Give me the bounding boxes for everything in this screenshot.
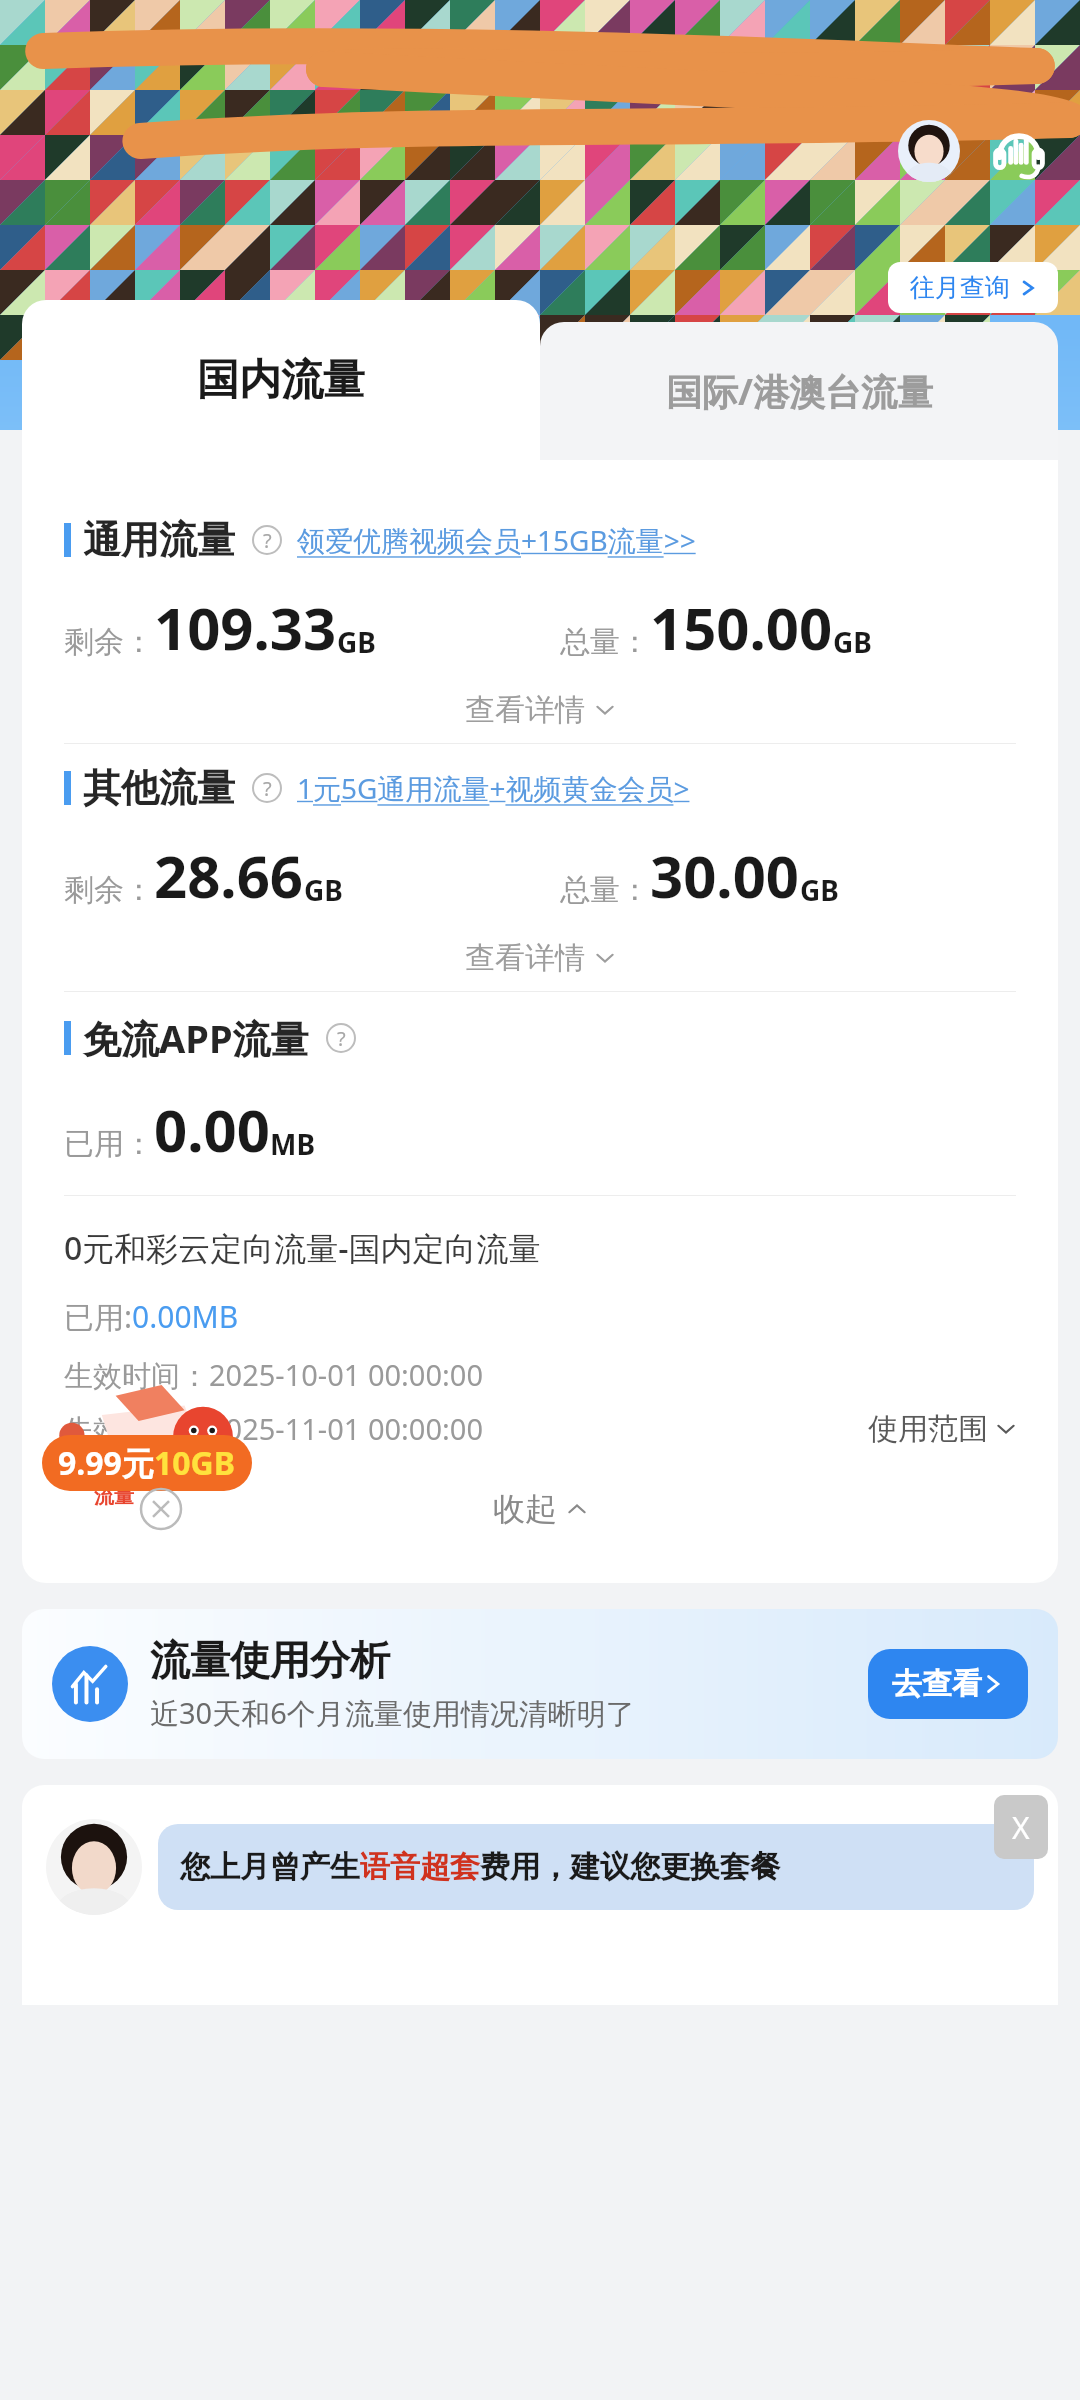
staticText: 10GB [154,1441,236,1485]
button[interactable]: Help [251,772,283,804]
staticText: 失效时间：2025-11-01 00:00:00 [64,1409,483,1449]
staticText: ? [263,527,272,554]
button[interactable]: Customer service [988,120,1050,182]
staticText: 28.66 [154,836,304,915]
staticText: 109.33 [154,588,337,667]
staticText: 副卡查询 [910,347,1010,378]
staticText: X [1012,1807,1030,1848]
staticText: 全球通金卡 [319,360,454,394]
staticText: GB [337,623,376,661]
staticText: 其他流量 [83,764,235,812]
staticText: 去查看 [892,1665,982,1703]
staticText: 剩余： [64,623,154,661]
button[interactable]: 去查看 [868,1649,1028,1719]
button[interactable]: 流量使用分析 [22,1609,1058,1759]
staticText: 查看详情 [465,691,585,729]
staticText: ? [337,1025,346,1052]
staticText: 总量： [560,623,650,661]
staticText: 近30天和6个月流量使用情况清晰明了 [150,1693,635,1733]
staticText: 1元5G通用流量+视频黄金会员> [297,769,690,807]
staticText: MB [270,1125,316,1163]
staticText: 生效时间：2025-10-01 00:00:00 [64,1355,483,1395]
staticText: 免流APP流量 [83,1012,309,1064]
staticText: GB [304,871,343,909]
staticText: 往月查询 [910,272,1010,303]
button[interactable]: 往月查询 [888,262,1058,313]
staticText: 10GB [94,1449,160,1484]
staticText: 领爱优腾视频会员+15GB流量>> [297,521,696,559]
staticText: 国际/港澳台流量 [666,367,933,416]
button[interactable]: Help [251,524,283,556]
staticText: 查看详情 [465,939,585,977]
button[interactable]: 9.99元 [42,1435,252,1491]
button[interactable]: 查看详情 [22,691,1058,729]
button[interactable]: 您上月曾产生语音超套费用，建议您更换套餐 [158,1824,1034,1910]
button[interactable]: 副卡查询 [888,337,1058,388]
staticText: 150.00 [650,588,833,667]
staticText: 使用范围 [868,1410,988,1448]
staticText: 通用流量 [83,516,235,564]
staticText: 30.00 [650,836,800,915]
button[interactable]: 1元5G通用流量+视频黄金会员> [297,769,690,807]
staticText: 0元和彩云定向流量-国内定向流量 [64,1226,541,1270]
staticText: 已用:0.00MB [64,1296,239,1337]
staticText: ? [263,775,272,802]
button[interactable]: 国际/港澳台流量 [540,322,1058,460]
staticText: 总量： [560,871,650,909]
button[interactable]: 使用范围 [868,1410,1016,1448]
button[interactable]: Profile [898,120,960,182]
button[interactable]: 全球通金卡 [263,350,494,404]
staticText: 0.00 [154,1090,270,1169]
button[interactable]: 查看详情 [22,939,1058,977]
staticText: GB [800,871,839,909]
staticText: 流量使用分析 [150,1635,390,1685]
staticText: 已用： [64,1125,154,1163]
staticText: 收起 [493,1489,557,1529]
button[interactable]: 4星客户 [38,350,231,404]
staticText: 您上月曾产生语音超套费用，建议您更换套餐 [180,1848,780,1886]
button[interactable]: Close banner [994,1795,1048,1859]
staticText: 9.99元 [58,1441,154,1485]
staticText: GB [833,623,872,661]
button[interactable]: Close ad [138,1486,184,1532]
button[interactable]: 领爱优腾视频会员+15GB流量>> [297,521,696,559]
button[interactable]: 收起 [493,1489,587,1529]
staticText: 剩余： [64,871,154,909]
staticText: 流量 [94,1484,134,1509]
button[interactable]: Help [325,1022,357,1054]
staticText: 国内流量 [197,354,365,407]
button[interactable]: 国内流量 [22,300,540,460]
